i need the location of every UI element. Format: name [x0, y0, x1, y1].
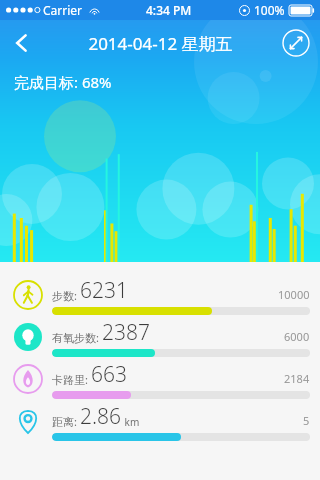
staticText: 6000	[284, 329, 310, 344]
button[interactable]: 有氧步数:	[0, 316, 320, 358]
staticText: 2014-04-12 星期五	[88, 32, 233, 55]
button[interactable]: 距离:	[0, 400, 320, 442]
staticText: 2184	[284, 371, 310, 386]
button[interactable]: 卡路里:	[0, 358, 320, 400]
staticText: Carrier	[43, 2, 83, 18]
staticText: 10000	[278, 287, 310, 302]
button[interactable]: Back	[0, 21, 44, 65]
button[interactable]: Expand	[282, 29, 310, 57]
staticText: 卡路里:	[52, 372, 91, 387]
staticText: 663	[91, 360, 127, 389]
staticText: 2387	[102, 318, 150, 347]
staticText: 步数:	[52, 288, 80, 303]
staticText: 4:34 PM	[146, 2, 192, 18]
staticText: 6231	[80, 276, 128, 305]
staticText: 距离:	[52, 414, 80, 429]
button[interactable]: 步数:	[0, 274, 320, 316]
staticText: 5	[303, 413, 310, 428]
staticText: km	[122, 415, 140, 429]
staticText: 完成目标: 68%	[14, 72, 112, 92]
staticText: 100%	[254, 2, 285, 18]
staticText: 2.86	[80, 402, 122, 431]
staticText: 有氧步数:	[52, 330, 102, 345]
